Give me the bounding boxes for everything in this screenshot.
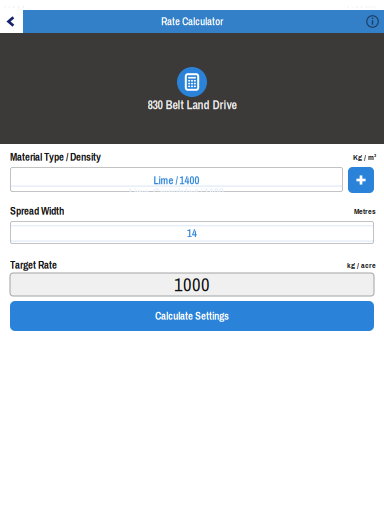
staticText: Kg / m³ (353, 152, 376, 162)
staticText: 1000 (174, 272, 210, 297)
staticText: Lime, Granulated / 1400 (129, 185, 224, 200)
button[interactable]: Calculate Settings (10, 301, 374, 331)
button[interactable]: Lime / 1400 (10, 167, 343, 192)
staticText: Spread Width (10, 204, 64, 218)
button[interactable]: Back (0, 10, 22, 33)
staticText: Lime / 1400 (153, 173, 199, 188)
button[interactable]: Information (363, 12, 382, 31)
staticText: 830 Belt Land Drive (147, 97, 236, 113)
button[interactable]: Rate Calculator (23, 10, 361, 33)
staticText: Metres (354, 206, 376, 216)
staticText: kg / acre (347, 260, 376, 270)
button[interactable]: 14 (10, 221, 374, 244)
staticText: Calculate Settings (155, 309, 229, 323)
staticText: Target Rate (10, 258, 57, 272)
button[interactable]: Add material (348, 167, 374, 193)
staticText: Material Type / Density (10, 150, 101, 164)
staticText: 14 (187, 226, 197, 241)
staticText: Rate Calculator (161, 14, 223, 29)
